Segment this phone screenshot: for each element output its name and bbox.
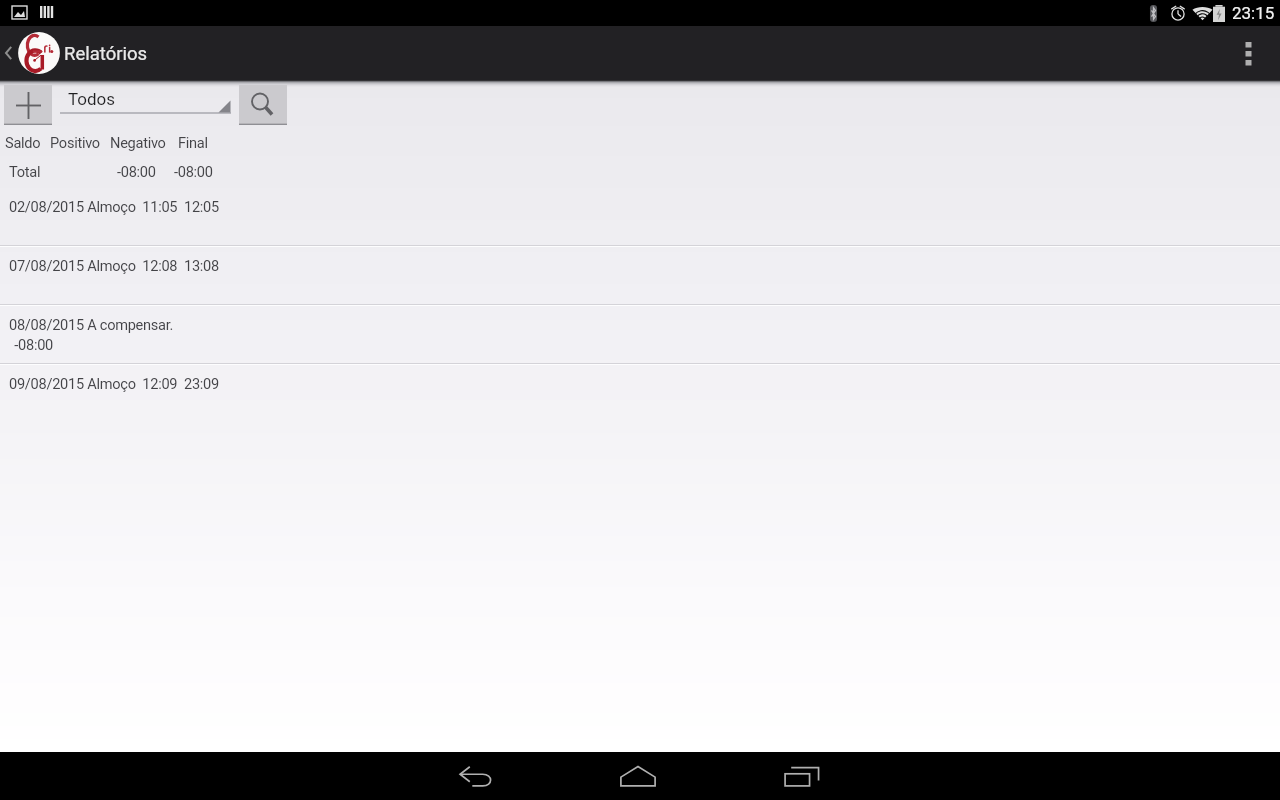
button[interactable]: Home — [590, 752, 686, 800]
staticText: 08/08/2015 A compensar. — [9, 316, 174, 333]
button[interactable]: 09/08/2015 Almoço 12:09 23:09 — [0, 365, 1280, 405]
staticText: Saldo — [5, 134, 41, 151]
staticText: -08:00 — [11, 336, 54, 353]
staticText: 09/08/2015 Almoço 12:09 23:09 — [9, 375, 219, 392]
staticText: Total — [9, 163, 41, 180]
staticText: -08:00 — [174, 163, 213, 180]
staticText: -08:00 — [117, 163, 156, 180]
button[interactable]: More options — [1226, 26, 1280, 80]
button[interactable]: 07/08/2015 Almoço 12:08 13:08 — [0, 247, 1280, 304]
button[interactable]: Search — [239, 85, 287, 125]
staticText: 02/08/2015 Almoço 11:05 12:05 — [9, 198, 219, 215]
staticText: Relatórios — [64, 43, 148, 65]
staticText: Todos — [68, 89, 116, 109]
button[interactable]: Recent apps — [754, 752, 850, 800]
button[interactable]: 08/08/2015 A compensar. — [0, 306, 1280, 363]
staticText: Positivo — [50, 134, 100, 151]
button[interactable]: 02/08/2015 Almoço 11:05 12:05 — [0, 190, 1280, 245]
button[interactable]: Add — [4, 85, 52, 125]
staticText: Negativo — [110, 134, 166, 151]
staticText: 23:15 — [1232, 3, 1275, 23]
button[interactable]: Filter: Todos — [60, 85, 231, 125]
button[interactable]: Back — [429, 752, 525, 800]
staticText: Final — [178, 134, 208, 151]
button[interactable]: Navigate up: Relatórios — [0, 26, 160, 80]
staticText: 07/08/2015 Almoço 12:08 13:08 — [9, 257, 219, 274]
